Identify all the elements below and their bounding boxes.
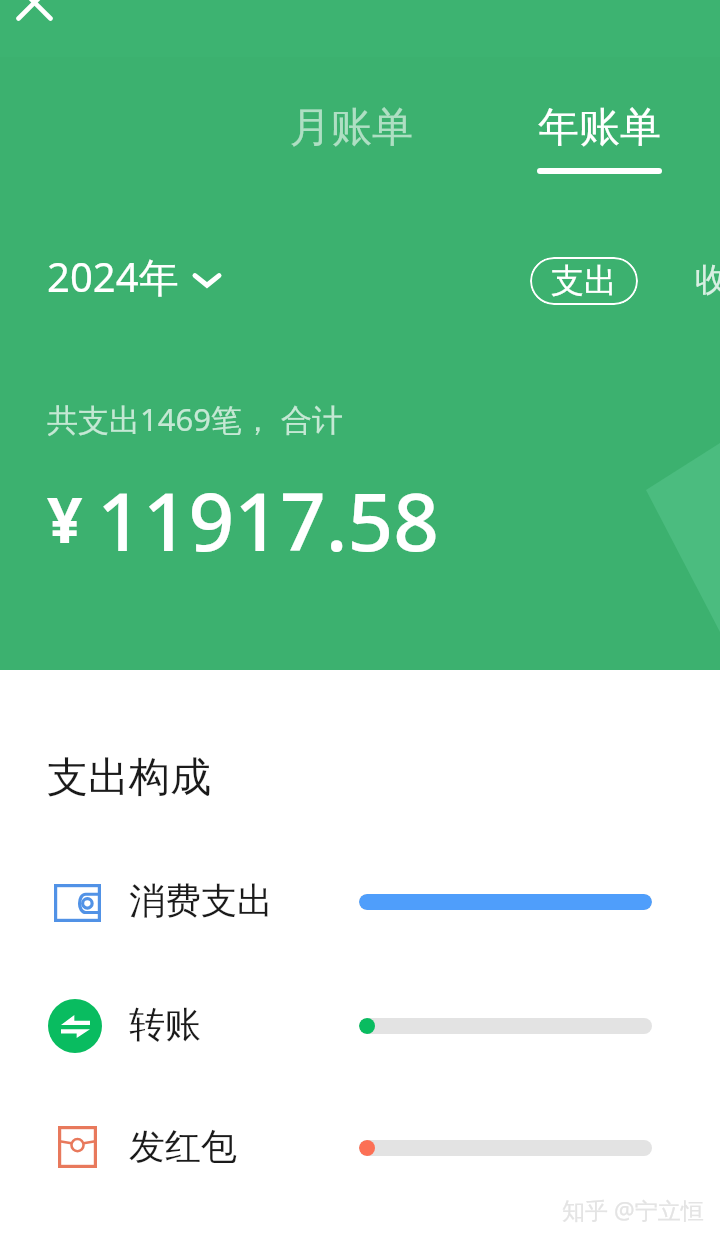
staticText: 支出构成: [47, 752, 211, 804]
staticText: 共支出1469笔， 合计: [47, 398, 343, 440]
button[interactable]: 2024年: [47, 249, 221, 304]
staticText: 年账单: [538, 102, 661, 154]
staticText: 发红包: [129, 1124, 237, 1169]
staticText: 转账: [129, 1002, 201, 1047]
staticText: ¥: [47, 477, 83, 561]
button[interactable]: Close: [10, 0, 59, 27]
staticText: 支出: [551, 260, 617, 302]
button[interactable]: 发红包: [0, 1113, 720, 1183]
staticText: 知乎 @宁立恒: [562, 1194, 704, 1225]
staticText: 2024年: [47, 249, 179, 304]
button[interactable]: 转账: [0, 991, 720, 1061]
button[interactable]: 年账单: [517, 84, 682, 192]
staticText: 11917.58: [97, 465, 440, 574]
staticText: 消费支出: [129, 878, 273, 923]
button[interactable]: 支出: [530, 257, 638, 305]
staticText: 月账单: [290, 102, 413, 154]
button[interactable]: 消费支出: [0, 867, 720, 937]
staticText: 收入: [695, 259, 720, 301]
button[interactable]: 月账单: [270, 84, 433, 172]
button[interactable]: 收入: [695, 259, 720, 301]
